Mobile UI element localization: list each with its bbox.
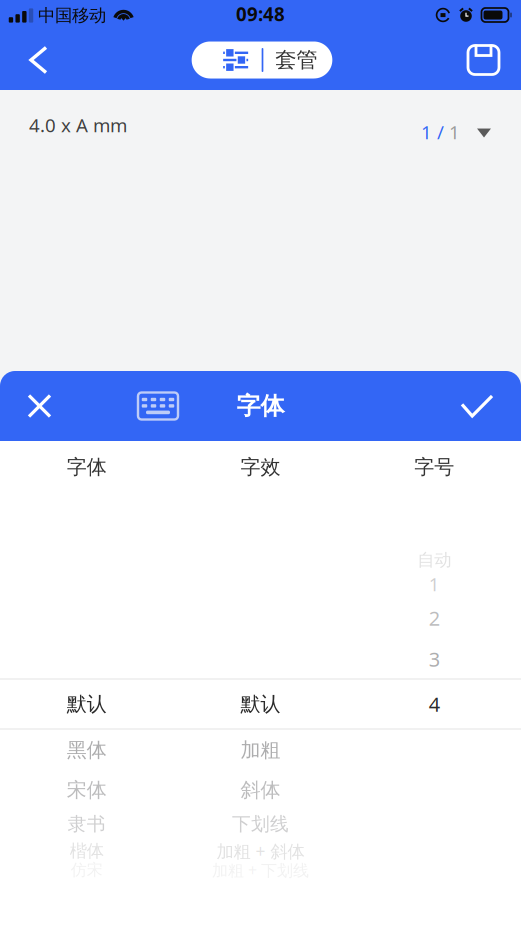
staticText: 默认 [240, 691, 280, 717]
staticText: 字体 [236, 391, 284, 421]
staticText: 字体 [67, 454, 107, 480]
staticText: 4 [429, 690, 440, 718]
staticText: 加粗 + 下划线 [212, 859, 309, 881]
staticText: 隶书 [68, 812, 106, 836]
button[interactable]: Done [442, 371, 521, 441]
button[interactable]: Select page [421, 95, 493, 149]
staticText: 斜体 [240, 777, 280, 803]
button[interactable]: Keyboard [70, 371, 198, 440]
staticText: 宋体 [67, 777, 107, 803]
button[interactable]: 套管 [192, 41, 332, 78]
staticText: 下划线 [232, 812, 289, 836]
staticText: 1 [421, 119, 432, 145]
staticText: 仿宋 [71, 860, 103, 880]
staticText: 加粗 [240, 737, 280, 763]
staticText: 3 [429, 645, 440, 673]
staticText: / [432, 119, 449, 145]
button[interactable]: Close [0, 371, 70, 440]
staticText: 套管 [275, 47, 317, 73]
staticText: 中国移动 [38, 5, 106, 26]
staticText: 加粗 + 斜体 [216, 839, 304, 863]
staticText: 楷体 [70, 840, 104, 862]
staticText: 09:48 [236, 1, 285, 27]
staticText: 1 [429, 571, 440, 597]
staticText: 2 [429, 604, 440, 632]
staticText: 默认 [67, 691, 107, 717]
button[interactable]: Save [455, 30, 521, 89]
staticText: 字号 [414, 454, 454, 480]
button[interactable]: Back [0, 30, 69, 89]
staticText: 字效 [240, 454, 280, 480]
staticText: 4.0 x A mm [29, 112, 127, 138]
staticText: 黑体 [67, 737, 107, 763]
staticText: 自动 [417, 549, 451, 571]
staticText: 1 [449, 119, 460, 145]
